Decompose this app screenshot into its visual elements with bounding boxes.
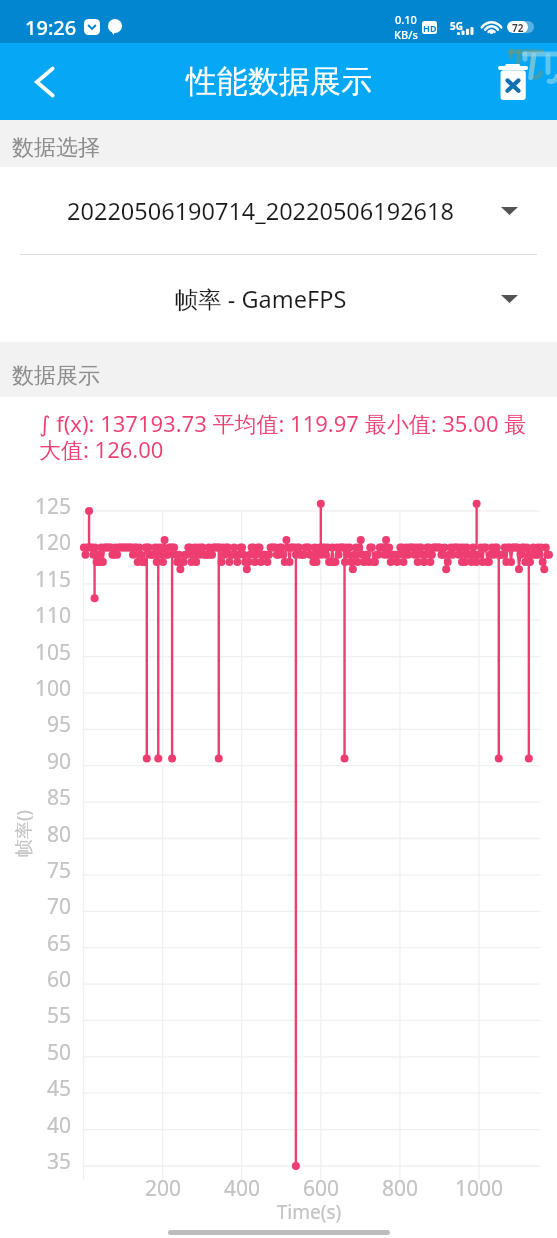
staticText: 115 bbox=[25, 565, 71, 594]
staticText: 45 bbox=[25, 1074, 71, 1103]
staticText: ∫ f(x): 137193.73 平均值: 119.97 最小值: 35.00… bbox=[39, 408, 527, 465]
staticText: 55 bbox=[25, 1001, 71, 1030]
staticText: 400 bbox=[202, 1174, 282, 1203]
staticText: 40 bbox=[25, 1111, 71, 1140]
staticText: 95 bbox=[25, 710, 71, 739]
staticText: 72 bbox=[512, 21, 524, 33]
staticText: 125 bbox=[25, 492, 71, 521]
staticText: 60 bbox=[25, 965, 71, 994]
staticText: 数据展示 bbox=[12, 362, 100, 390]
staticText: 5G bbox=[450, 19, 463, 33]
button[interactable]: Back bbox=[17, 54, 73, 110]
staticText: 105 bbox=[25, 638, 71, 667]
button[interactable]: Delete all records bbox=[487, 56, 539, 108]
staticText: 帧率 - GameFPS bbox=[0, 283, 521, 315]
staticText: Time(s) bbox=[259, 1199, 359, 1225]
staticText: 80 bbox=[25, 820, 71, 849]
staticText: 800 bbox=[360, 1174, 440, 1203]
staticText: 70 bbox=[25, 892, 71, 921]
staticText: 35 bbox=[25, 1147, 71, 1176]
staticText: 帧率() bbox=[10, 803, 35, 863]
staticText: 50 bbox=[25, 1038, 71, 1067]
staticText: 85 bbox=[25, 783, 71, 812]
staticText: 600 bbox=[281, 1174, 361, 1203]
staticText: 1000 bbox=[439, 1174, 519, 1203]
staticText: 110 bbox=[25, 601, 71, 630]
staticText: 数据选择 bbox=[12, 134, 100, 162]
staticText: 19:26 bbox=[25, 14, 77, 41]
button[interactable]: 20220506190714_20220506192618 bbox=[0, 167, 557, 254]
button[interactable]: 帧率 - GameFPS bbox=[0, 255, 557, 342]
staticText: HD bbox=[423, 22, 437, 34]
staticText: 120 bbox=[25, 528, 71, 557]
staticText: 100 bbox=[25, 674, 71, 703]
staticText: 200 bbox=[123, 1174, 203, 1203]
staticText: 性能数据展示 bbox=[186, 62, 372, 101]
staticText: 75 bbox=[25, 856, 71, 885]
staticText: 0.10 bbox=[395, 12, 417, 27]
staticText: 20220506190714_20220506192618 bbox=[0, 195, 521, 227]
staticText: 90 bbox=[25, 747, 71, 776]
staticText: KB/s bbox=[394, 27, 418, 42]
staticText: 65 bbox=[25, 929, 71, 958]
